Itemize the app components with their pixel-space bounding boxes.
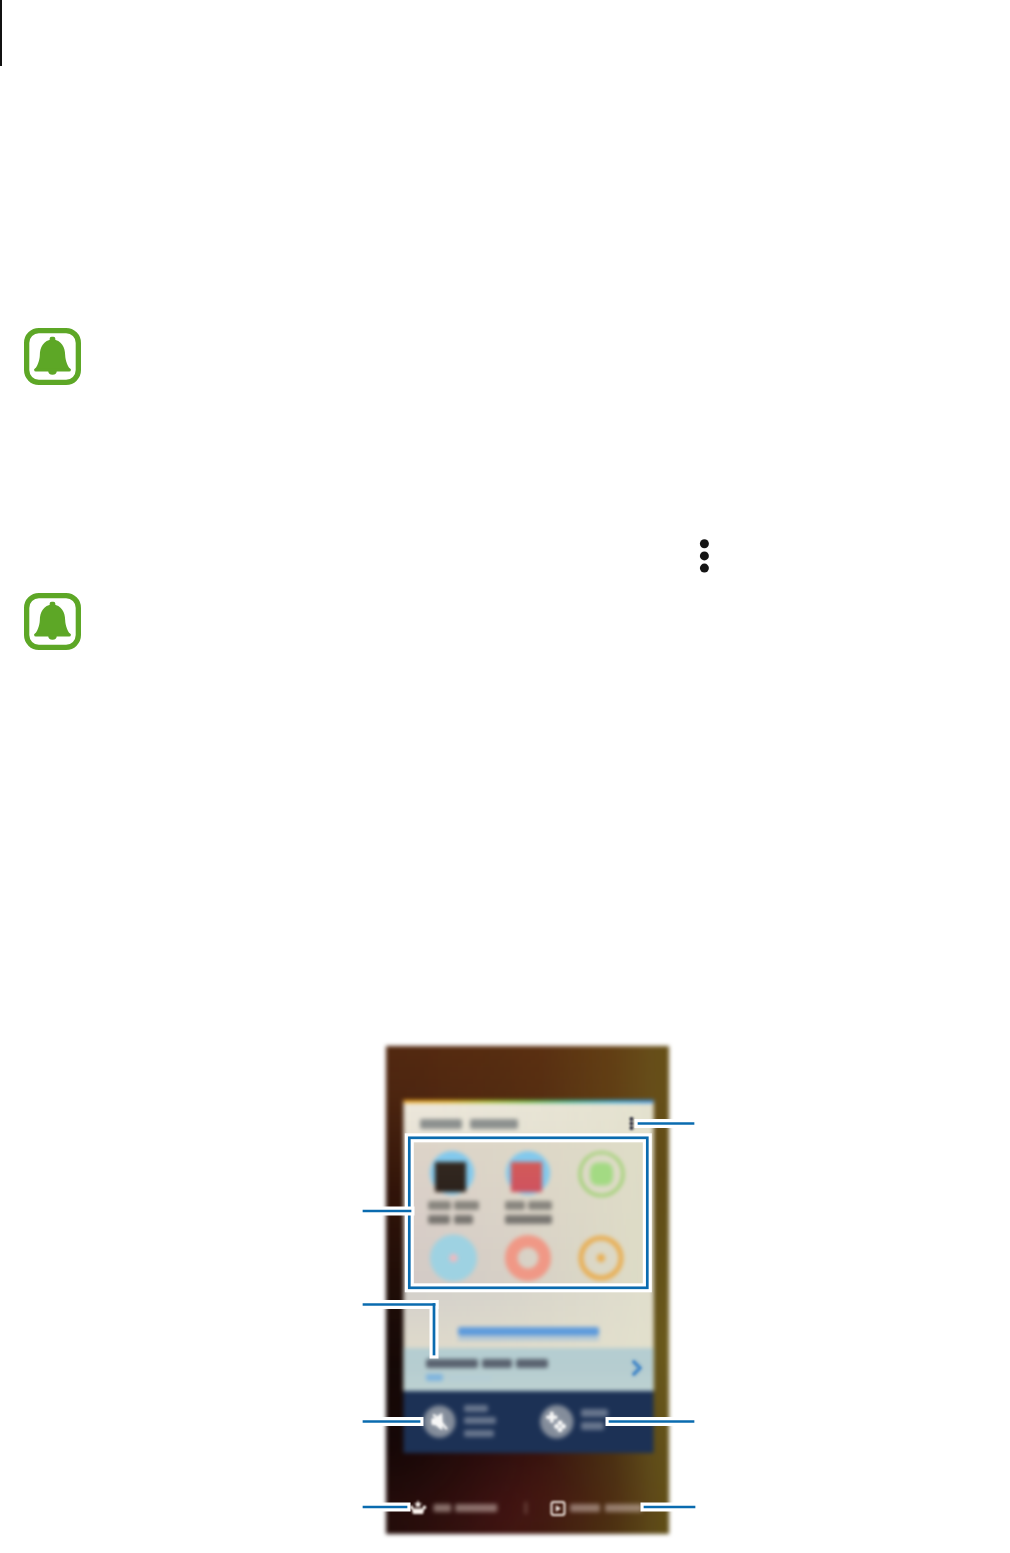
button[interactable]: Note <box>24 328 81 385</box>
button[interactable]: More options <box>699 538 710 573</box>
button[interactable]: Note <box>24 593 81 650</box>
